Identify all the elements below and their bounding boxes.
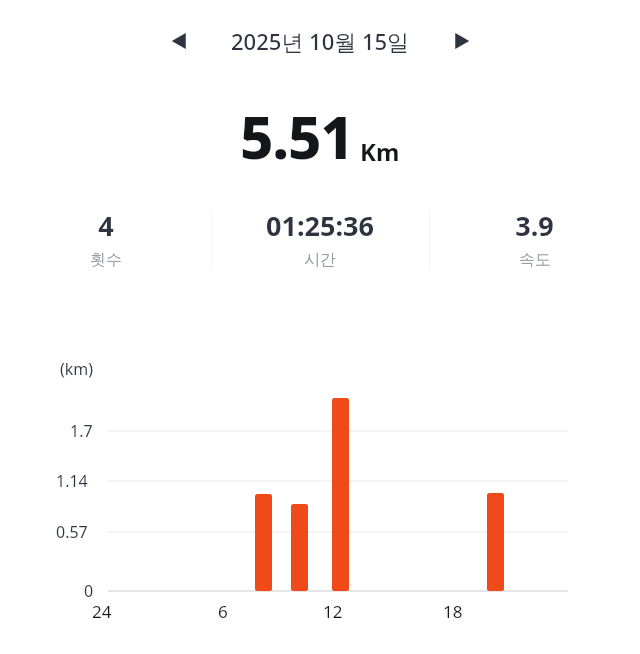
- button[interactable]: 01:25:36: [211, 205, 429, 270]
- staticText: (km): [60, 358, 94, 380]
- staticText: 24: [92, 600, 112, 623]
- button[interactable]: 4: [0, 205, 211, 270]
- staticText: 12: [323, 600, 343, 623]
- button[interactable]: 3.9: [429, 205, 640, 270]
- staticText: 속도: [519, 250, 551, 270]
- staticText: 시간: [304, 250, 336, 270]
- staticText: 횟수: [90, 250, 122, 270]
- staticText: 3.9: [515, 207, 554, 244]
- button[interactable]: Next day: [440, 24, 484, 58]
- staticText: 4: [98, 207, 114, 244]
- staticText: Km: [360, 135, 400, 168]
- staticText: 18: [443, 600, 463, 623]
- staticText: 2025년 10월 15일: [231, 26, 410, 56]
- staticText: 5.51: [240, 97, 354, 176]
- staticText: 0.57: [56, 521, 88, 543]
- staticText: 01:25:36: [266, 207, 374, 244]
- staticText: 1.14: [56, 470, 88, 492]
- staticText: 6: [218, 600, 228, 623]
- button[interactable]: Previous day: [157, 24, 201, 58]
- staticText: 1.7: [70, 420, 93, 442]
- staticText: 0: [84, 580, 94, 602]
